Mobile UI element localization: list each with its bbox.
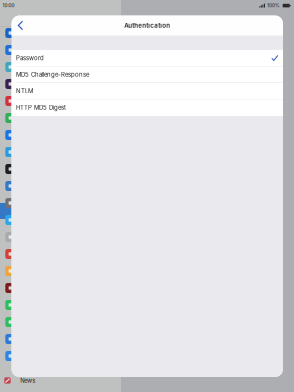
- button[interactable]: NTLM: [11, 83, 283, 99]
- staticText: HTTP MD5 Digest: [16, 104, 66, 111]
- staticText: MD5 Challenge-Response: [16, 71, 89, 78]
- staticText: Password: [16, 54, 44, 62]
- button[interactable]: News: [0, 373, 120, 387]
- button[interactable]: Password: [11, 50, 283, 66]
- button[interactable]: MD5 Challenge-Response: [11, 66, 283, 83]
- staticText: Authentication: [124, 22, 170, 29]
- staticText: 10:00: [3, 3, 15, 8]
- staticText: News: [20, 377, 35, 384]
- staticText: NTLM: [16, 87, 33, 95]
- staticText: 100%: [267, 3, 280, 8]
- button[interactable]: Back: [11, 15, 27, 35]
- button[interactable]: HTTP MD5 Digest: [11, 99, 283, 116]
